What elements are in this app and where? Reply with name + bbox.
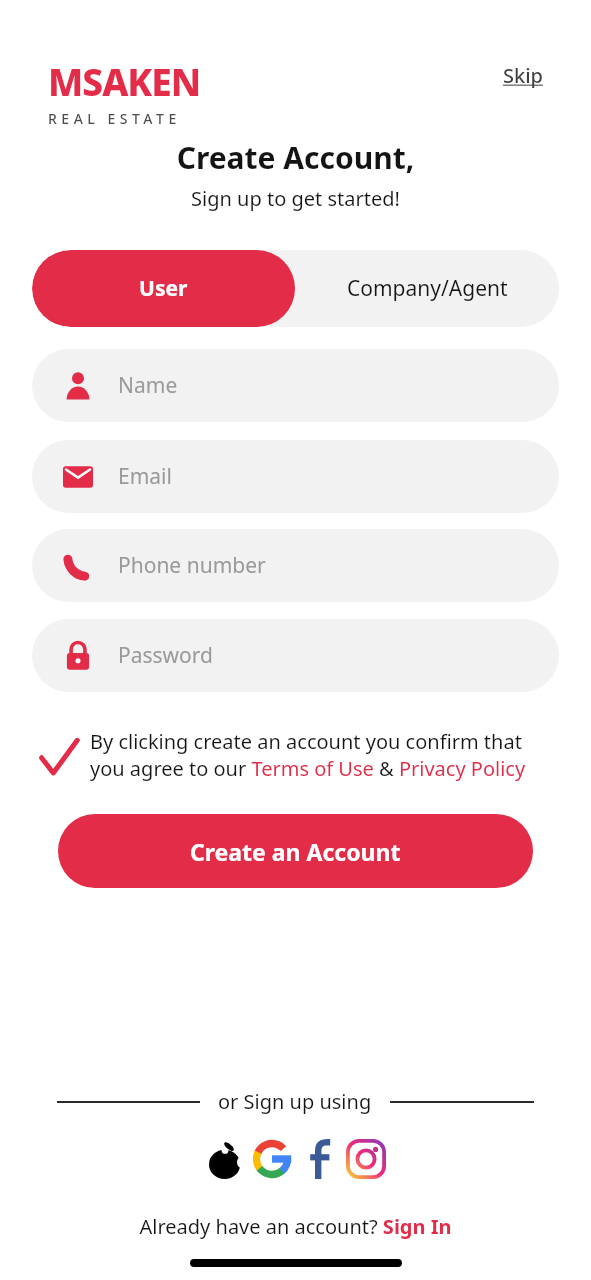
staticText: By clicking create an account you confir… [90, 728, 526, 782]
staticText: or Sign up using [218, 1088, 372, 1115]
button[interactable]: Create an Account [58, 814, 533, 888]
button[interactable]: Company/Agent [295, 250, 559, 327]
button[interactable]: Name [32, 349, 559, 422]
staticText: Create Account, [0, 137, 591, 178]
button[interactable]: Phone number [32, 529, 559, 602]
button[interactable] [250, 1137, 294, 1181]
button[interactable]: User [32, 250, 295, 327]
staticText: Skip [503, 62, 543, 89]
button[interactable]: Skip [503, 62, 543, 89]
button[interactable] [297, 1137, 341, 1181]
staticText: Password [118, 641, 213, 670]
button[interactable] [203, 1137, 247, 1181]
button[interactable] [344, 1137, 388, 1181]
button[interactable]: Password [32, 619, 559, 692]
staticText: Create an Account [190, 836, 401, 867]
staticText: Company/Agent [347, 274, 508, 303]
button[interactable]: Email [32, 440, 559, 513]
staticText: MSAKEN [48, 56, 201, 106]
staticText: Name [118, 371, 178, 400]
staticText: Phone number [118, 551, 266, 580]
staticText: User [139, 274, 188, 303]
staticText: Email [118, 462, 172, 491]
button[interactable]: By clicking create an account you confir… [40, 728, 526, 782]
staticText: REAL ESTATE [48, 109, 181, 128]
staticText: Sign up to get started! [0, 185, 591, 212]
button[interactable]: Already have an account? Sign In [0, 1213, 591, 1240]
